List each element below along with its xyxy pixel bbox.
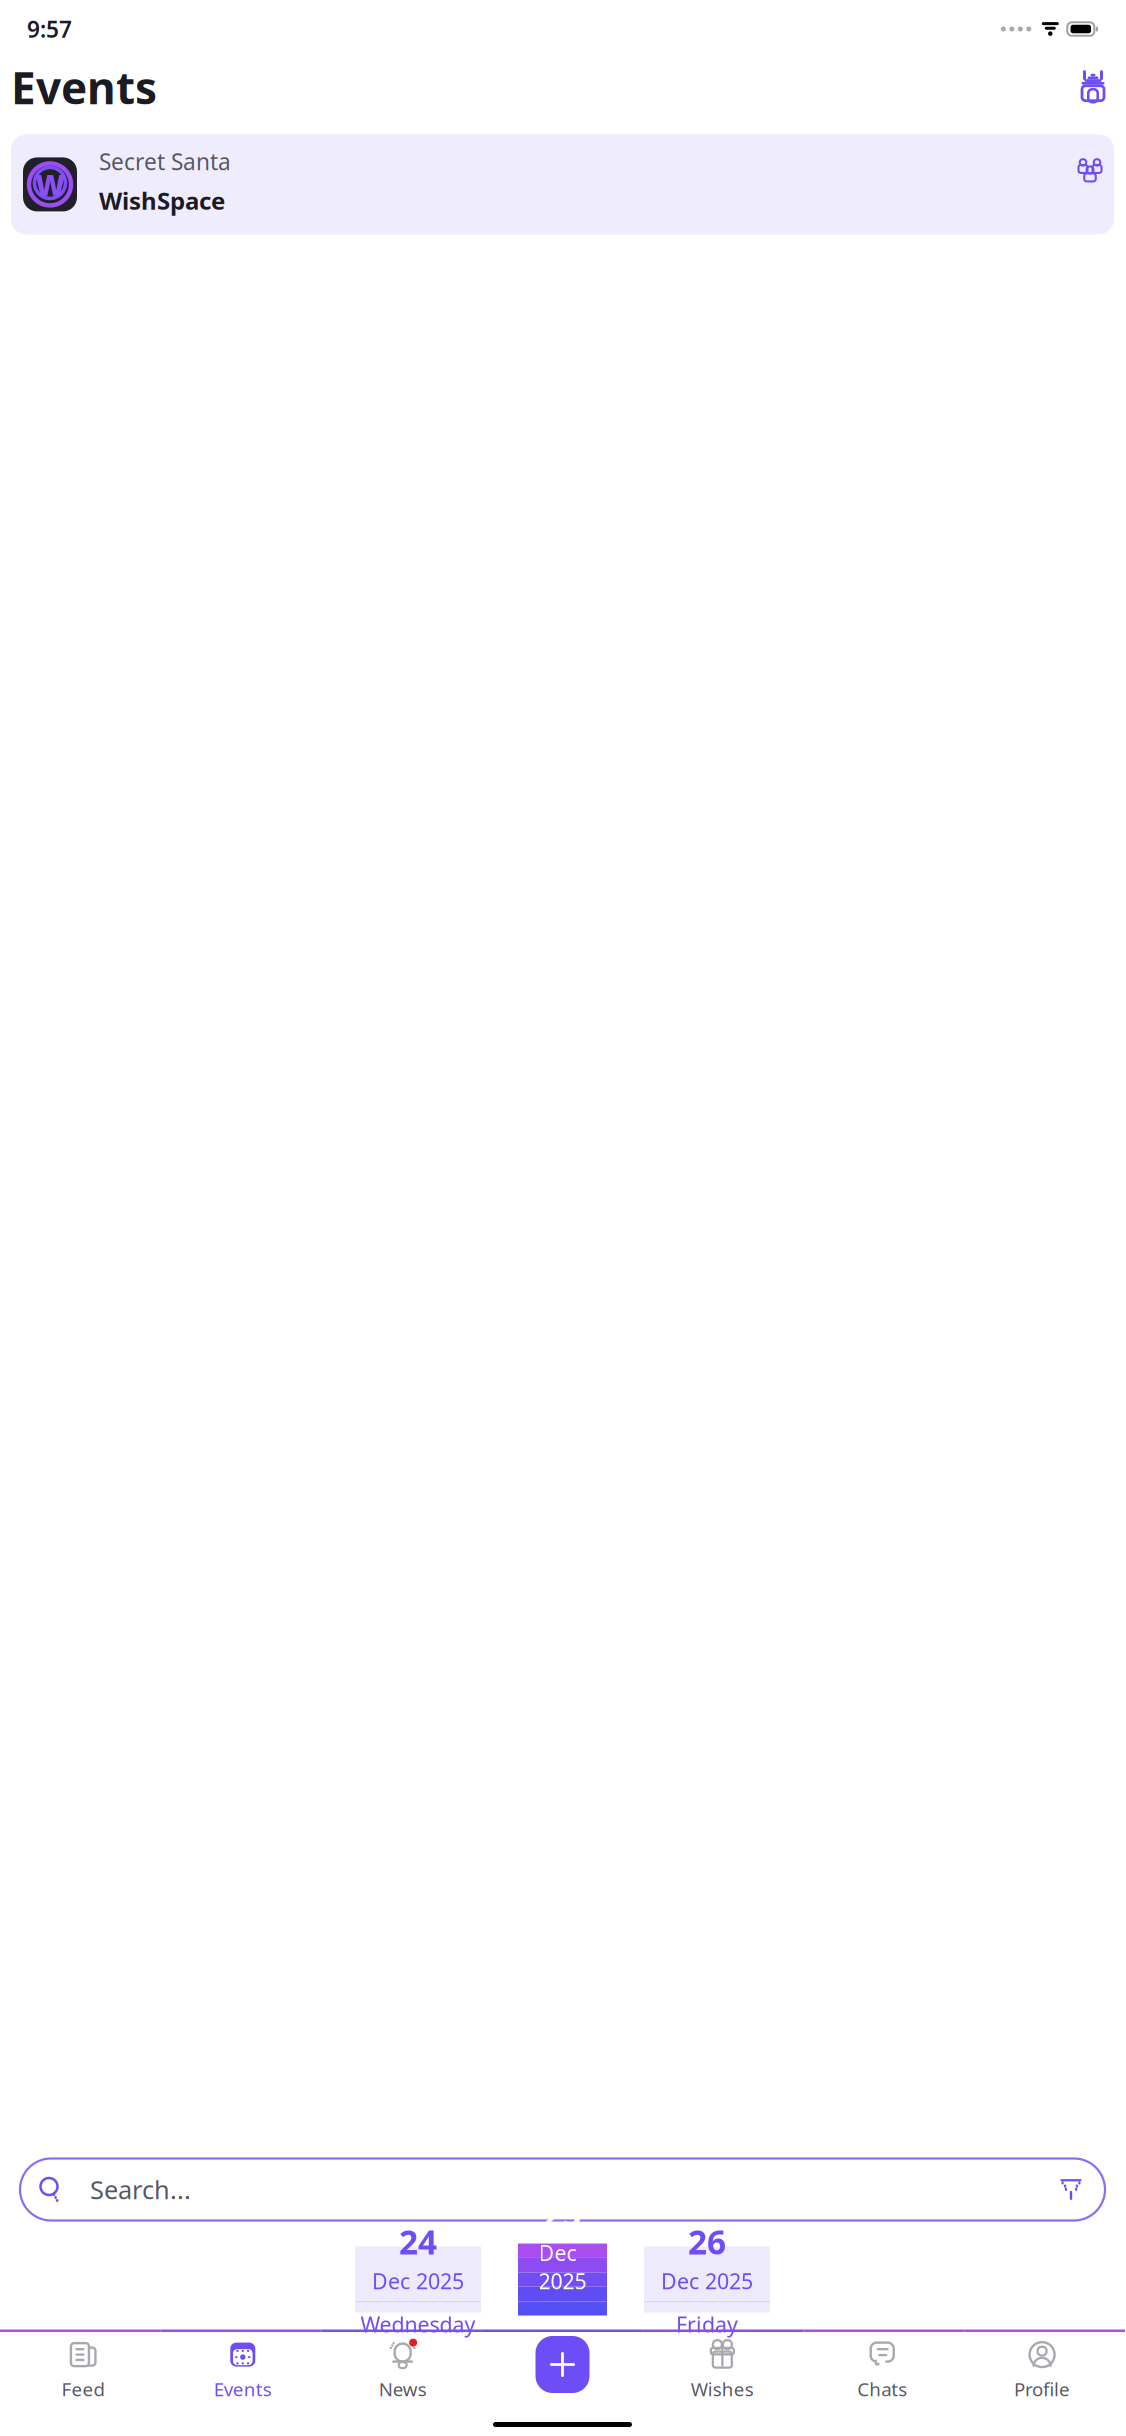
staticText: Dec 2025 — [661, 2267, 753, 2295]
staticText: Feed — [61, 2377, 104, 2401]
button[interactable]: Profile — [962, 2332, 1122, 2408]
staticText: Events — [11, 58, 157, 116]
button[interactable]: 26 — [644, 2212, 770, 2346]
button[interactable]: News — [323, 2332, 483, 2408]
staticText: Dec 2025 — [538, 2238, 586, 2295]
button[interactable]: 25 — [518, 2184, 607, 2375]
staticText: 25 — [543, 2191, 581, 2235]
staticText: Secret Santa — [99, 146, 231, 176]
staticText: Dec 2025 — [372, 2267, 464, 2295]
staticText: Thursday — [518, 2310, 607, 2367]
staticText: Wednesday — [360, 2310, 475, 2338]
staticText: Events — [214, 2377, 272, 2401]
button[interactable]: W — [11, 134, 1114, 234]
staticText: Chats — [857, 2377, 907, 2401]
staticText: Friday — [676, 2310, 738, 2338]
staticText: 24 — [399, 2219, 437, 2264]
button[interactable]: Feed — [3, 2332, 163, 2408]
button[interactable]: Create — [483, 2332, 642, 2408]
staticText: Profile — [1014, 2377, 1070, 2401]
button[interactable]: Wishes — [642, 2332, 802, 2408]
button[interactable]: Chats — [802, 2332, 962, 2408]
staticText: Search... — [90, 2173, 191, 2206]
button[interactable]: Events — [163, 2332, 323, 2408]
staticText: 26 — [688, 2219, 726, 2264]
staticText: W — [35, 165, 65, 204]
staticText: WishSpace — [99, 184, 225, 216]
button[interactable]: Search... — [20, 2158, 1105, 2220]
button[interactable]: Home — [1072, 66, 1114, 108]
staticText: News — [379, 2377, 427, 2401]
staticText: Wishes — [691, 2377, 754, 2401]
button[interactable]: 24 — [355, 2212, 481, 2346]
staticText: 9:57 — [27, 14, 72, 44]
